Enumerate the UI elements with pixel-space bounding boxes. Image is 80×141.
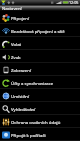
staticText: Nastavení — [2, 6, 22, 12]
button[interactable]: Call — [0, 37, 80, 50]
button[interactable]: Search — [0, 102, 80, 115]
other: Sound — [2, 53, 10, 61]
other: Location — [2, 92, 10, 100]
other: Connect to PC — [2, 131, 10, 139]
staticText: Připojit k počítači — [11, 132, 46, 138]
button[interactable]: Connections — [0, 12, 80, 24]
other: Accounts and sync — [2, 79, 10, 87]
other: Display — [2, 66, 10, 74]
staticText: Připojení — [11, 15, 30, 21]
staticText: Zobrazení — [11, 67, 32, 73]
staticText: Účty a synchronizace — [11, 80, 54, 86]
button[interactable]: Accounts and sync — [0, 76, 80, 89]
staticText: Volat — [11, 41, 22, 47]
staticText: Bezdrátová připojení a sítě — [11, 28, 65, 34]
staticText: Ochrana osobních údajů — [11, 119, 61, 125]
button[interactable]: Display — [0, 63, 80, 76]
button[interactable]: Privacy — [0, 115, 80, 128]
other: Privacy — [2, 118, 10, 126]
other: Call — [2, 40, 10, 48]
other: Search — [2, 105, 10, 113]
button[interactable]: Connect to PC — [0, 128, 80, 141]
staticText: 12:05 — [69, 0, 79, 5]
staticText: Zvuk — [11, 54, 21, 60]
button[interactable]: Location — [0, 89, 80, 102]
button[interactable]: Wireless and networks — [0, 24, 80, 37]
button[interactable]: Sound — [0, 50, 80, 63]
staticText: Vyhledávání — [11, 106, 36, 112]
other: Wireless and networks — [2, 27, 10, 35]
other: Connections — [2, 14, 10, 22]
staticText: Umístění — [11, 93, 30, 99]
